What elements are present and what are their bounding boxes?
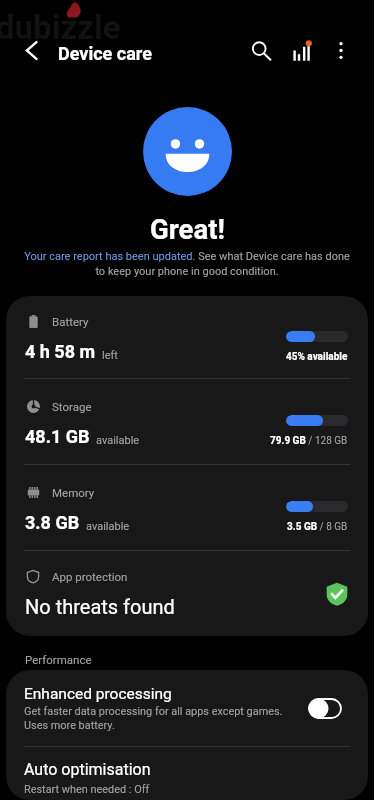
staticText: Auto optimisation	[24, 760, 151, 779]
staticText: 4 h 58 m	[25, 341, 96, 362]
staticText: Storage	[52, 400, 92, 413]
button[interactable]: Battery	[6, 296, 368, 378]
button[interactable]: Usage statistics	[282, 28, 324, 72]
staticText: dubizzle	[0, 8, 121, 47]
staticText: 3.8 GB	[25, 512, 80, 533]
button[interactable]: App protection	[6, 551, 368, 636]
staticText: 48.1 GB	[25, 426, 90, 447]
button[interactable]: Search	[237, 28, 282, 72]
staticText: Enhanced processing	[24, 685, 172, 703]
button[interactable]: Storage	[6, 379, 368, 464]
staticText: App protection	[52, 570, 128, 583]
button[interactable]: Memory	[6, 465, 368, 550]
staticText: 3.5 GB / 8 GB	[287, 521, 348, 533]
staticText: No threats found	[25, 595, 175, 618]
staticText: 79.9 GB / 128 GB	[270, 435, 348, 447]
staticText: Great!	[150, 213, 225, 245]
staticText: Get faster data processing for all apps …	[24, 705, 283, 731]
button[interactable]: More options	[324, 28, 358, 72]
staticText: Your care report has been updated. See w…	[22, 250, 352, 278]
button[interactable]: Back	[0, 28, 52, 72]
staticText: left	[102, 349, 118, 362]
staticText: Battery	[52, 315, 89, 328]
button[interactable]: Enhanced processing toggle	[308, 698, 342, 719]
staticText: available	[96, 434, 140, 447]
button[interactable]: Enhanced processing	[6, 670, 368, 746]
staticText: 45% available	[286, 351, 348, 363]
staticText: Device care	[58, 43, 152, 64]
staticText: Performance	[25, 653, 92, 666]
staticText: available	[86, 520, 130, 533]
staticText: Memory	[52, 486, 95, 499]
staticText: Restart when needed : Off	[24, 783, 150, 796]
button[interactable]: Auto optimisation	[6, 747, 368, 800]
